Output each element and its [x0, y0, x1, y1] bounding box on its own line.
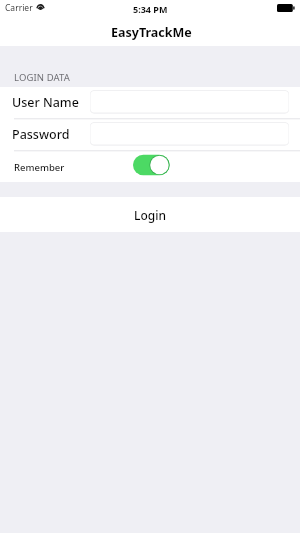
button[interactable]: User Name — [90, 90, 289, 114]
staticText: 5:34 PM — [133, 3, 168, 15]
button[interactable]: Password — [90, 122, 289, 146]
staticText: LOGIN DATA — [14, 71, 70, 84]
staticText: User Name — [12, 94, 79, 111]
staticText: Login — [134, 207, 166, 223]
staticText: EasyTrackMe — [111, 24, 192, 41]
button[interactable]: Remember toggle — [133, 154, 170, 176]
staticText: Remember — [14, 161, 65, 174]
button[interactable]: Login — [0, 197, 300, 232]
staticText: Carrier — [5, 2, 33, 14]
staticText: Password — [12, 126, 70, 143]
